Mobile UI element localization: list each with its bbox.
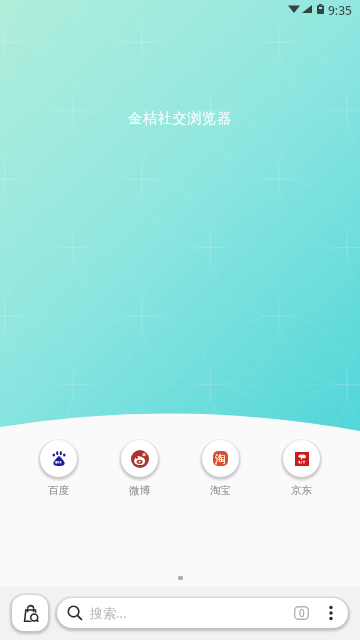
staticText: 淘宝 (210, 484, 231, 497)
staticText: 金桔社交浏览器 (0, 110, 360, 128)
staticText: 淘 (215, 452, 226, 466)
staticText: 百度 (48, 484, 69, 497)
button[interactable]: 淘 (180, 440, 261, 497)
staticText: 9:35 (328, 2, 352, 18)
button[interactable]: 百度 (18, 440, 99, 497)
button[interactable]: Shopping search (12, 595, 48, 631)
staticText: 0 (299, 606, 305, 620)
button[interactable]: Tabs (294, 606, 309, 620)
button[interactable]: 微博 (99, 440, 180, 497)
staticText: 京东 (291, 484, 312, 497)
button[interactable]: 搜索... (57, 598, 348, 628)
staticText: 微博 (129, 484, 150, 497)
button[interactable]: 京东 (261, 440, 342, 497)
staticText: 搜索... (90, 604, 127, 622)
button[interactable]: More options (323, 605, 339, 621)
